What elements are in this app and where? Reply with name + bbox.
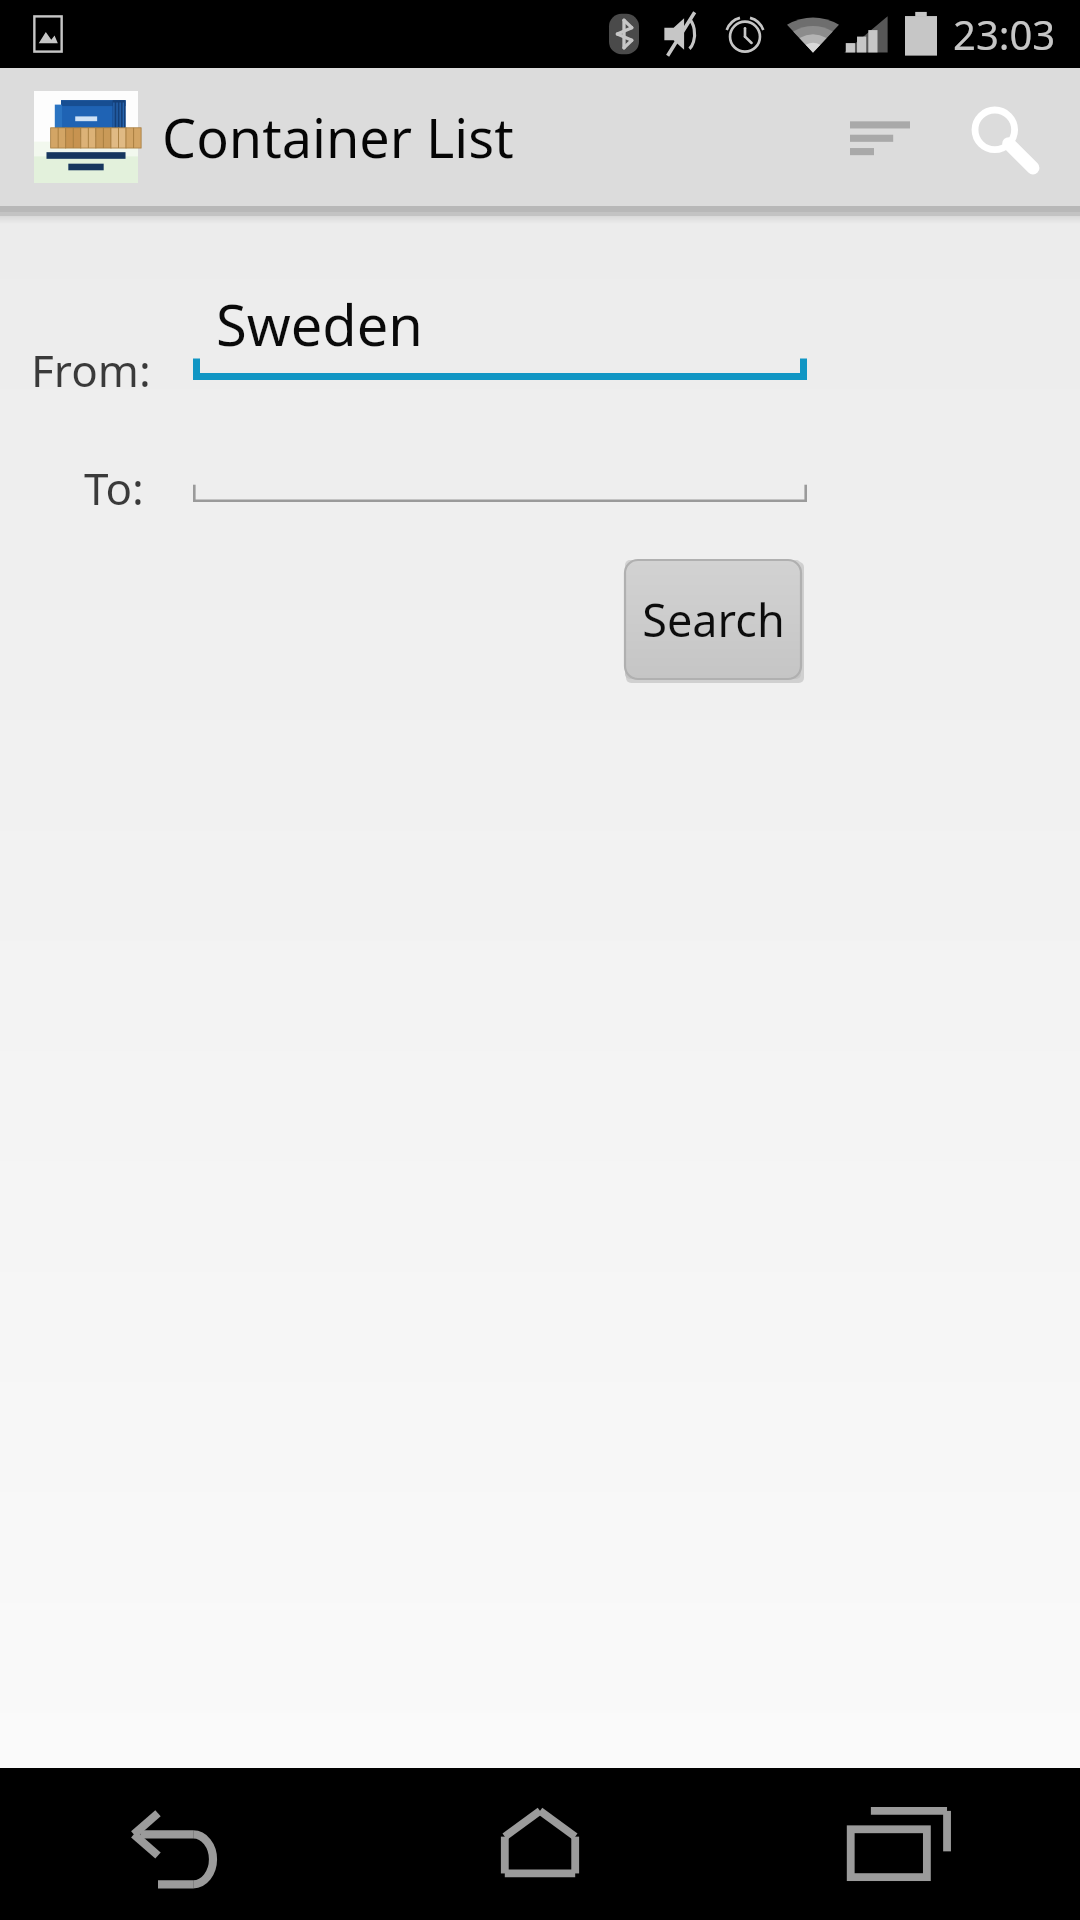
staticText: 23:03 xyxy=(953,7,1056,61)
button[interactable]: Search xyxy=(624,559,802,680)
staticText: To: xyxy=(84,458,144,518)
button[interactable]: Sort xyxy=(832,82,928,192)
staticText: Search xyxy=(642,589,785,650)
button[interactable]: Back xyxy=(0,1768,360,1920)
staticText: From: xyxy=(31,340,151,400)
button[interactable] xyxy=(193,474,807,502)
button[interactable]: Home xyxy=(360,1768,720,1920)
staticText: Container List xyxy=(162,100,514,174)
button[interactable]: Search xyxy=(950,82,1054,192)
button[interactable] xyxy=(193,352,807,380)
staticText: Sweden xyxy=(216,286,423,362)
button[interactable]: Recent apps xyxy=(720,1768,1080,1920)
